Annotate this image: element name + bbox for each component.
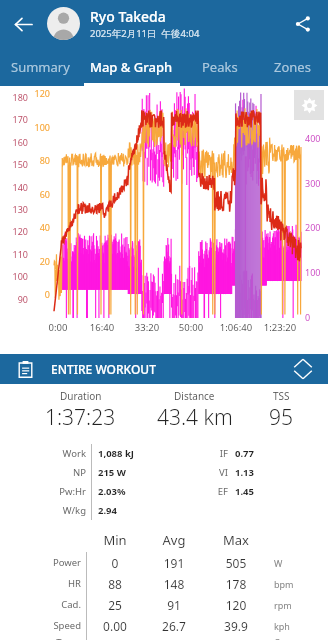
staticText: 120 xyxy=(30,87,50,99)
staticText: 80 xyxy=(30,154,50,166)
staticText: 0.00 xyxy=(87,618,143,634)
staticText: NP xyxy=(0,466,86,479)
staticText: 160 xyxy=(2,136,28,148)
staticText: 120 xyxy=(2,225,28,237)
staticText: 200 xyxy=(305,221,328,233)
button[interactable]: Peaks xyxy=(183,47,257,86)
staticText: 90 xyxy=(2,293,28,305)
staticText: Pw:Hr xyxy=(0,485,86,498)
staticText: 400 xyxy=(305,132,328,144)
staticText: 26.7 xyxy=(143,618,205,634)
staticText: 180 xyxy=(2,91,28,103)
staticText: 0.77 xyxy=(235,447,254,460)
staticText: 2.03% xyxy=(98,485,173,498)
staticText: HR xyxy=(0,577,81,590)
button[interactable]: Back xyxy=(7,8,39,40)
staticText: Work xyxy=(0,447,86,460)
staticText: Map & Graph xyxy=(90,58,173,76)
staticText: Min xyxy=(87,531,143,549)
button[interactable]: Share xyxy=(288,9,318,39)
staticText: Distance xyxy=(174,389,215,403)
staticText: Avg xyxy=(143,531,205,549)
button[interactable]: Zones xyxy=(257,47,328,86)
staticText: ENTIRE WORKOUT xyxy=(51,361,156,377)
staticText: 140 xyxy=(2,181,28,193)
staticText: 1:06:40 xyxy=(215,321,257,334)
staticText: 39.9 xyxy=(205,618,267,634)
staticText: 25 xyxy=(87,597,143,613)
staticText: 170 xyxy=(2,113,28,125)
staticText: 148 xyxy=(143,576,205,592)
staticText: 1:23:20 xyxy=(259,321,301,334)
staticText: 150 xyxy=(2,158,28,170)
staticText: 0:00 xyxy=(37,321,79,334)
staticText: 88 xyxy=(87,576,143,592)
staticText: 500 xyxy=(305,87,328,99)
button[interactable]: Settings xyxy=(294,90,324,120)
staticText: 2.94 xyxy=(98,504,173,517)
button[interactable]: ENTIRE WORKOUT xyxy=(0,354,328,384)
staticText: Temp xyxy=(0,636,81,640)
staticText: Speed xyxy=(0,619,81,632)
staticText: 1.13 xyxy=(235,466,254,479)
staticText: 120 xyxy=(205,597,267,613)
staticText: 1:37:23 xyxy=(45,403,116,432)
staticText: 110 xyxy=(2,248,28,260)
staticText: 1,088 kJ xyxy=(98,447,173,460)
staticText: 91 xyxy=(143,597,205,613)
staticText: 60 xyxy=(30,188,50,200)
staticText: Cad. xyxy=(0,598,81,611)
button[interactable]: Summary xyxy=(0,47,80,86)
staticText: 40 xyxy=(30,221,50,233)
staticText: 50:00 xyxy=(170,321,212,334)
staticText: Summary xyxy=(11,58,70,76)
staticText: 100 xyxy=(30,121,50,133)
staticText: 100 xyxy=(2,270,28,282)
staticText: 95 xyxy=(269,403,293,432)
staticText: Peaks xyxy=(202,58,238,76)
button[interactable]: Map & Graph xyxy=(80,47,183,86)
staticText: IF xyxy=(173,447,228,460)
staticText: VI xyxy=(173,466,228,479)
staticText: EF xyxy=(173,485,228,498)
staticText: 191 xyxy=(143,555,205,571)
staticText: W xyxy=(274,557,283,569)
staticText: 100 xyxy=(305,266,328,278)
staticText: Duration xyxy=(60,389,102,403)
staticText: 1.45 xyxy=(235,485,254,498)
staticText: 505 xyxy=(205,555,267,571)
staticText: bpm xyxy=(274,578,294,590)
staticText: TSS xyxy=(273,389,290,403)
staticText: 178 xyxy=(205,576,267,592)
staticText: 0 xyxy=(30,288,50,300)
staticText: 33:20 xyxy=(126,321,168,334)
staticText: kph xyxy=(274,620,290,632)
staticText: 2025年2月11日 午後4:04 xyxy=(90,27,200,40)
staticText: 16:40 xyxy=(81,321,123,334)
staticText: 43.4 km xyxy=(157,403,233,432)
staticText: 0 xyxy=(305,311,328,323)
staticText: 20 xyxy=(30,255,50,267)
staticText: Max xyxy=(205,531,267,549)
button[interactable]: Expand xyxy=(290,356,316,382)
staticText: W/kg xyxy=(0,504,86,517)
staticText: 130 xyxy=(2,203,28,215)
staticText: C xyxy=(274,636,280,640)
staticText: rpm xyxy=(274,599,292,611)
staticText: Ryo Takeda xyxy=(90,7,166,26)
staticText: 0 xyxy=(87,555,143,571)
staticText: Zones xyxy=(274,58,311,76)
staticText: 300 xyxy=(305,177,328,189)
staticText: Power xyxy=(0,556,81,569)
staticText: 215 W xyxy=(98,466,173,479)
